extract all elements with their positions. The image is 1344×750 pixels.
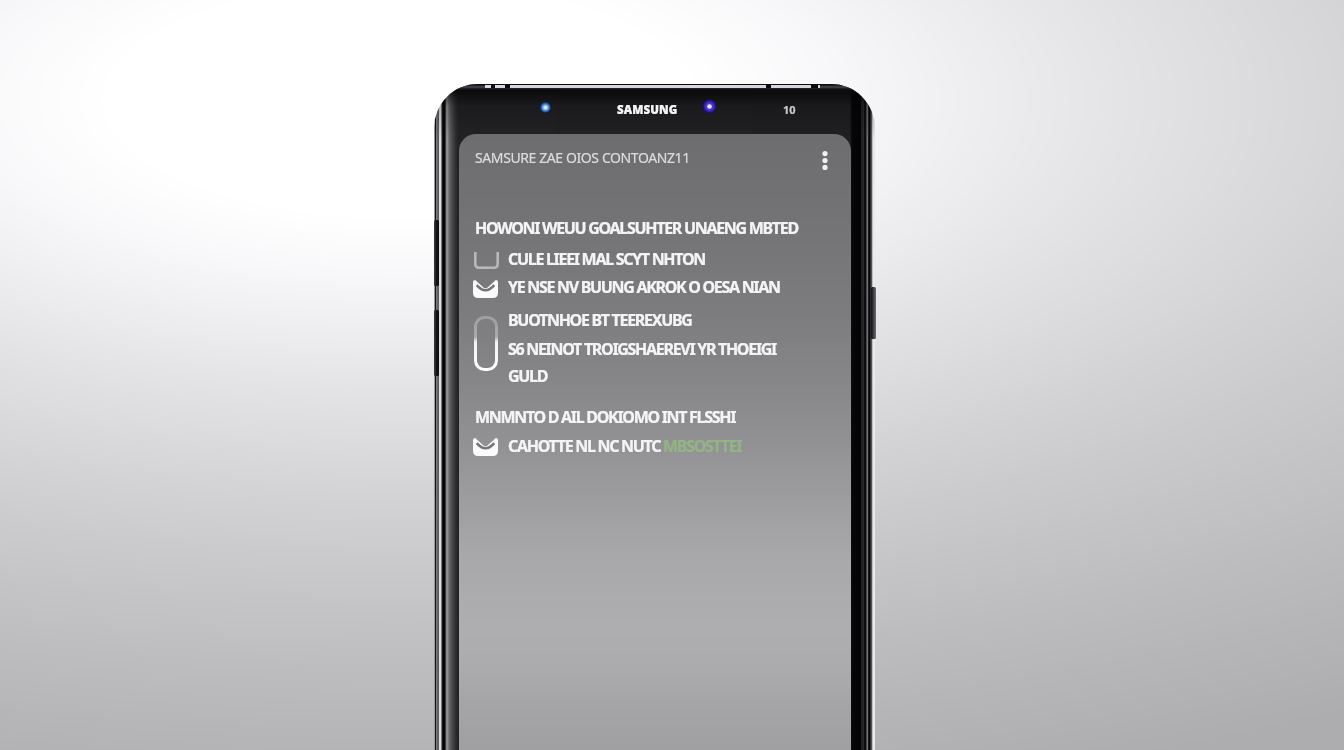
- button[interactable]: CAHOTTE NL NC NUTC: [508, 433, 845, 459]
- staticText: BUOTNHOE BT TEEREXUBG: [508, 309, 692, 331]
- staticText: YE NSE NV BUUNG AKROK O OESA NIAN: [508, 276, 780, 298]
- button[interactable]: More options: [807, 142, 843, 178]
- staticText: 10: [783, 102, 796, 117]
- button[interactable]: Volume: [434, 220, 439, 286]
- button[interactable]: S6 NEINOT TROIGSHAEREVI YR THOEIGI: [508, 336, 845, 362]
- button[interactable]: Volume: [434, 310, 439, 376]
- staticText: SAMSURE ZAE OIOS CONTOANZ11: [475, 148, 690, 167]
- button[interactable]: YE NSE NV BUUNG AKROK O OESA NIAN: [508, 274, 845, 300]
- staticText: CULE LIEEI MAL SCYT NHTON: [508, 248, 705, 270]
- staticText: GULD: [508, 365, 548, 387]
- staticText: S6 NEINOT TROIGSHAEREVI YR THOEIGI: [508, 338, 777, 360]
- staticText: HOWONI WEUU GOALSUHTER UNAENG MBTED: [475, 217, 798, 239]
- button[interactable]: GULD: [508, 363, 845, 389]
- button[interactable]: SAMSURE ZAE OIOS CONTOANZ11: [459, 139, 807, 175]
- button[interactable]: BUOTNHOE BT TEEREXUBG: [508, 307, 845, 333]
- button[interactable]: HOWONI WEUU GOALSUHTER UNAENG MBTED: [467, 217, 843, 239]
- staticText: MNMNTO D AIL DOKIOMO INT FLSSHI: [475, 406, 736, 428]
- button[interactable]: CULE LIEEI MAL SCYT NHTON: [508, 246, 845, 272]
- staticText: CAHOTTE NL NC NUTC: [508, 435, 663, 457]
- button[interactable]: MNMNTO D AIL DOKIOMO INT FLSSHI: [467, 406, 843, 428]
- staticText: MBSOSTTEI: [663, 435, 742, 457]
- button[interactable]: Power: [871, 287, 876, 339]
- staticText: SAMSUNG: [617, 102, 678, 118]
